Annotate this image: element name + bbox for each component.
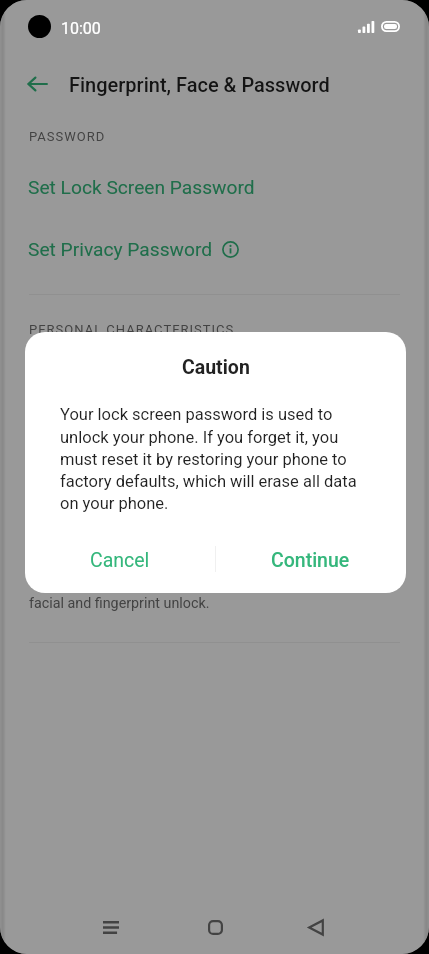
button[interactable]: Back xyxy=(290,901,342,953)
button[interactable]: Fingerprint xyxy=(0,355,429,400)
staticText: Cancel xyxy=(90,549,150,572)
staticText: 10:00 xyxy=(61,19,101,38)
staticText: Caution xyxy=(182,356,250,379)
staticText: Fingerprint, Face & Password xyxy=(69,73,330,96)
button[interactable]: Set Lock Screen Password xyxy=(0,165,429,210)
staticText: Face xyxy=(28,428,69,451)
button[interactable]: Face xyxy=(0,417,429,462)
button[interactable]: Continue xyxy=(215,536,406,584)
button[interactable]: Set Privacy Password xyxy=(0,227,429,272)
staticText: Set your lock screen password before ena… xyxy=(29,573,325,612)
button[interactable]: Cancel xyxy=(25,536,215,584)
staticText: PASSWORD xyxy=(29,129,106,144)
staticText: Your lock screen password is used to unl… xyxy=(60,405,362,513)
button[interactable]: Recent apps xyxy=(85,901,137,953)
staticText: Set Privacy Password xyxy=(28,238,213,261)
button[interactable]: Home xyxy=(189,901,241,953)
staticText: Set Lock Screen Password xyxy=(28,176,255,199)
staticText: PERSONAL CHARACTERISTICS xyxy=(29,322,235,337)
staticText: Continue xyxy=(271,549,350,572)
button[interactable]: Back xyxy=(16,63,58,105)
